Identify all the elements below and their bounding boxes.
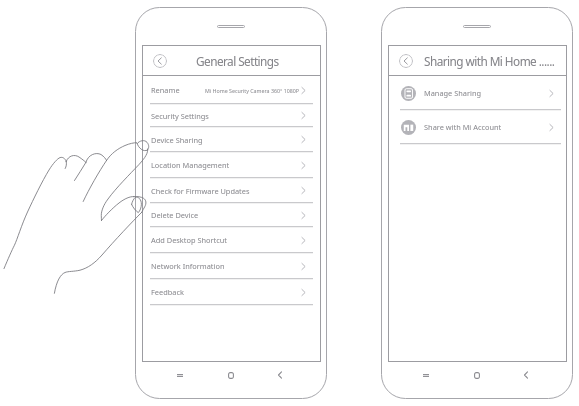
- button[interactable]: Back: [153, 54, 167, 68]
- staticText: Rename: [151, 85, 180, 95]
- staticText: Feedback: [151, 287, 184, 297]
- button[interactable]: Recent apps: [416, 365, 436, 385]
- button[interactable]: Rename: [142, 76, 321, 104]
- button[interactable]: Check for Firmware Updates: [142, 178, 321, 203]
- staticText: Network Information: [151, 261, 225, 271]
- staticText: Mi Home Security Camera 360° 1080P: [205, 87, 299, 94]
- button[interactable]: Delete Device: [142, 203, 321, 227]
- button[interactable]: Network Information: [142, 253, 321, 279]
- staticText: Device Sharing: [151, 135, 203, 145]
- staticText: General Settings: [196, 53, 279, 69]
- staticText: Sharing with Mi Home ......: [424, 53, 555, 69]
- button[interactable]: Back: [399, 54, 413, 68]
- staticText: Check for Firmware Updates: [151, 186, 250, 196]
- staticText: Location Management: [151, 160, 230, 170]
- button[interactable]: Recent apps: [170, 365, 190, 385]
- button[interactable]: Share with Mi Account: [388, 110, 567, 144]
- button[interactable]: Device Sharing: [142, 127, 321, 152]
- button[interactable]: Location Management: [142, 152, 321, 178]
- staticText: Manage Sharing: [424, 88, 482, 98]
- staticText: Add Desktop Shortcut: [151, 235, 227, 245]
- staticText: Security Settings: [151, 111, 209, 121]
- button[interactable]: Back: [516, 365, 536, 385]
- button[interactable]: Back: [270, 365, 290, 385]
- button[interactable]: Home: [467, 365, 487, 385]
- staticText: Share with Mi Account: [424, 122, 502, 132]
- button[interactable]: Add Desktop Shortcut: [142, 227, 321, 253]
- button[interactable]: Home: [221, 365, 241, 385]
- button[interactable]: Manage Sharing: [388, 76, 567, 110]
- button[interactable]: Security Settings: [142, 104, 321, 127]
- staticText: Delete Device: [151, 210, 199, 220]
- button[interactable]: Feedback: [142, 279, 321, 305]
